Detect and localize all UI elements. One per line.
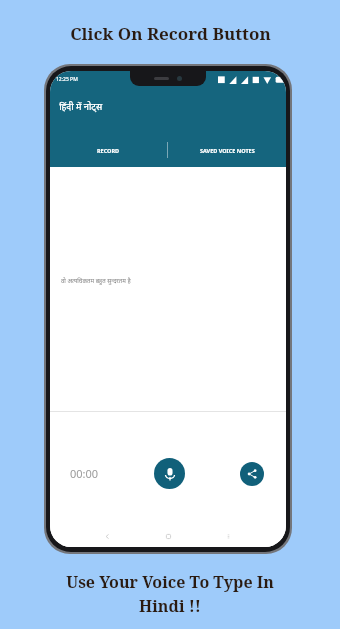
staticText: Click On Record Button [70, 22, 271, 45]
other: Back [104, 533, 111, 540]
staticText: Hindi !! [139, 595, 201, 617]
button[interactable]: SAVED VOICE NOTES [168, 133, 286, 167]
other: Home [165, 533, 172, 540]
button[interactable]: RECORD [50, 133, 167, 167]
staticText: SAVED VOICE NOTES [200, 147, 255, 154]
button[interactable]: Record [154, 458, 185, 489]
button[interactable]: Share [240, 462, 264, 486]
other: Recents [225, 533, 232, 540]
staticText: वो अत्यधिकतम बहुत सुन्दरतम है [61, 277, 131, 285]
staticText: हिंदी में नोट्स [59, 100, 103, 112]
staticText: 00:00 [70, 466, 99, 481]
staticText: RECORD [97, 147, 120, 154]
staticText: 12:25 PM [56, 76, 78, 83]
staticText: Use Your Voice To Type In [66, 571, 274, 593]
